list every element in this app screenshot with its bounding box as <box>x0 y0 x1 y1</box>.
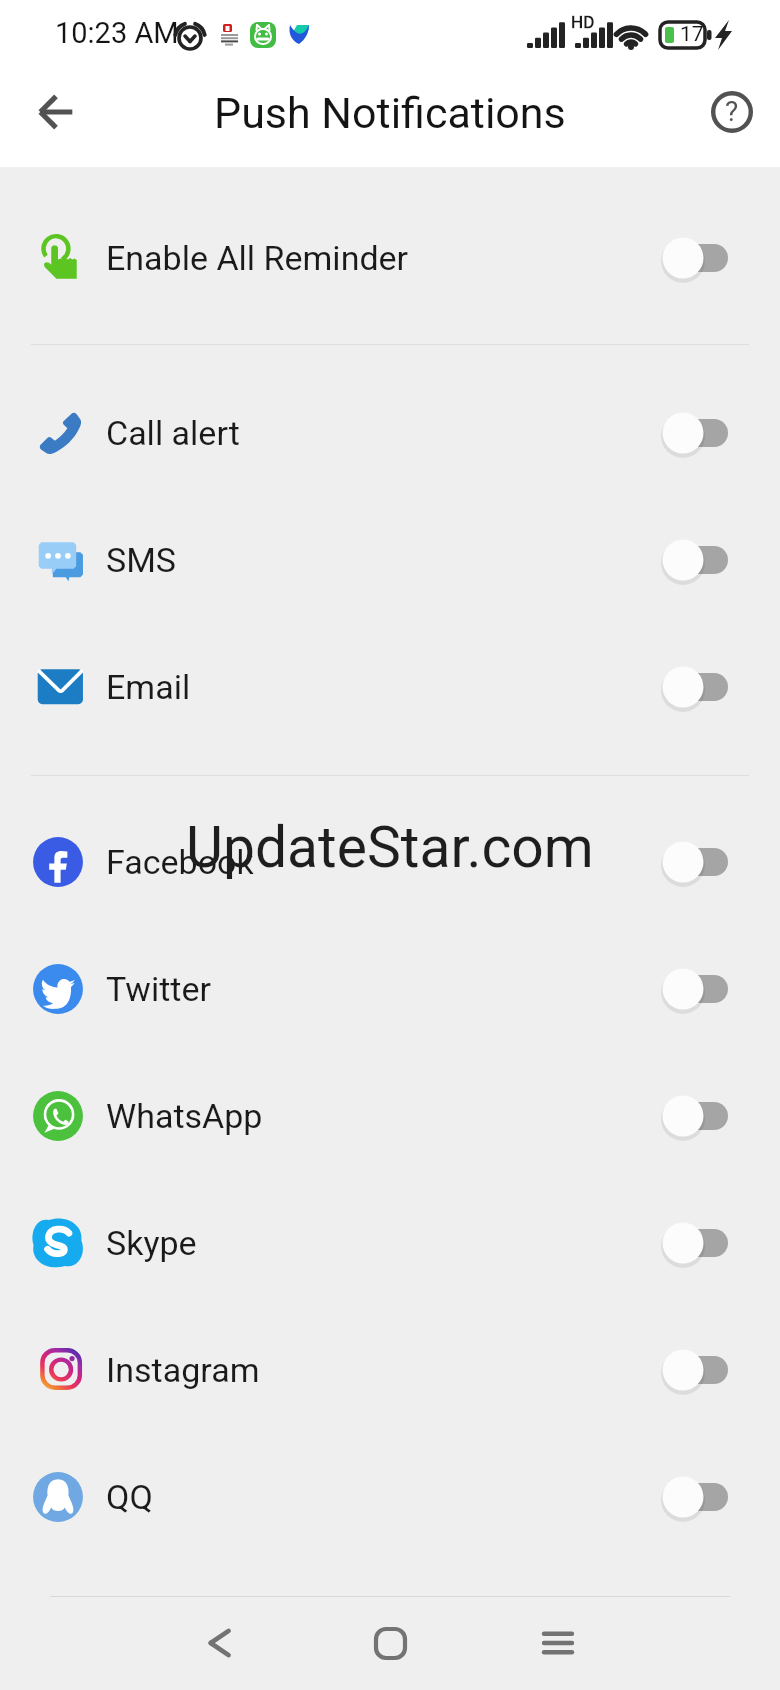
button[interactable]: SMS <box>0 504 780 616</box>
staticText: Push Notifications <box>214 88 566 138</box>
button[interactable]: Toggle Skype <box>656 1213 728 1273</box>
button[interactable]: Toggle Twitter <box>656 959 728 1019</box>
staticText: Email <box>106 667 191 707</box>
button[interactable]: Toggle WhatsApp <box>656 1086 728 1146</box>
staticText: HD <box>571 12 595 32</box>
button[interactable]: Call alert <box>0 377 780 489</box>
button[interactable]: Enable All Reminder <box>0 202 780 314</box>
button[interactable]: Twitter <box>0 933 780 1045</box>
button[interactable]: Help <box>698 78 766 146</box>
button[interactable]: QQ <box>0 1441 780 1553</box>
staticText: UpdateStar.com <box>186 814 594 881</box>
button[interactable]: Toggle Email <box>656 657 728 717</box>
staticText: Twitter <box>106 969 211 1009</box>
staticText: WhatsApp <box>106 1096 263 1136</box>
button[interactable]: Instagram <box>0 1314 780 1426</box>
button[interactable]: Back <box>171 1595 267 1690</box>
button[interactable]: WhatsApp <box>0 1060 780 1172</box>
button[interactable]: Recent apps <box>510 1595 606 1690</box>
staticText: SMS <box>106 540 177 580</box>
button[interactable]: Email <box>0 631 780 743</box>
staticText: Facebook <box>106 842 254 882</box>
button[interactable]: Toggle Enable All Reminder <box>656 228 728 288</box>
staticText: Enable All Reminder <box>106 238 409 278</box>
button[interactable]: Toggle SMS <box>656 530 728 590</box>
staticText: Skype <box>106 1223 197 1263</box>
staticText: Instagram <box>106 1350 260 1390</box>
button[interactable]: Home <box>342 1595 438 1690</box>
staticText: QQ <box>106 1477 153 1517</box>
button[interactable]: Toggle Instagram <box>656 1340 728 1400</box>
button[interactable]: Toggle Call alert <box>656 403 728 463</box>
button[interactable]: Toggle Facebook <box>656 832 728 892</box>
button[interactable]: Back <box>22 78 90 146</box>
staticText: ? <box>725 95 739 128</box>
staticText: 10:23 AM <box>55 16 179 50</box>
staticText: 17 <box>680 22 704 47</box>
button[interactable]: Toggle QQ <box>656 1467 728 1527</box>
staticText: Call alert <box>106 413 240 453</box>
button[interactable]: Facebook <box>0 806 780 918</box>
button[interactable]: Skype <box>0 1187 780 1299</box>
